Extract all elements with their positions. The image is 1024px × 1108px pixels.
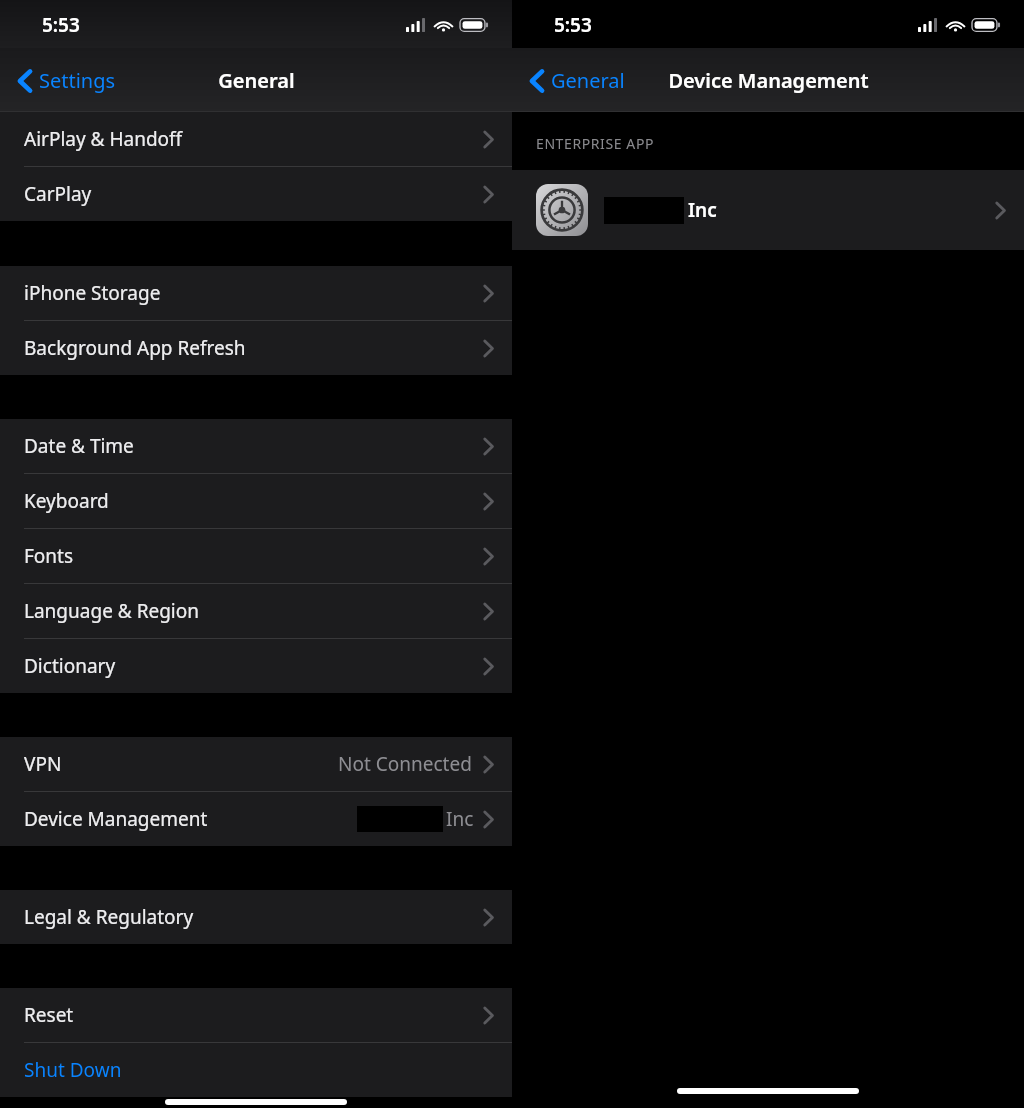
staticText: VPN bbox=[24, 751, 62, 777]
staticText: 5:53 bbox=[42, 12, 80, 38]
button[interactable]: Dictionary bbox=[0, 639, 512, 693]
button[interactable]: Fonts bbox=[0, 529, 512, 584]
staticText: General bbox=[551, 67, 625, 94]
staticText: 5:53 bbox=[554, 12, 592, 38]
button[interactable]: Reset bbox=[0, 988, 512, 1043]
staticText: Fonts bbox=[24, 543, 74, 569]
button[interactable]: iPhone Storage bbox=[0, 266, 512, 321]
staticText: General bbox=[218, 67, 295, 94]
button[interactable]: Background App Refresh bbox=[0, 321, 512, 375]
button[interactable]: AirPlay & Handoff bbox=[0, 112, 512, 167]
staticText: Legal & Regulatory bbox=[24, 904, 194, 930]
button[interactable]: Inc bbox=[512, 170, 1024, 250]
button[interactable]: General bbox=[526, 61, 629, 100]
button[interactable]: VPN bbox=[0, 737, 512, 792]
button[interactable]: CarPlay bbox=[0, 167, 512, 221]
staticText: Language & Region bbox=[24, 598, 199, 624]
staticText: Settings bbox=[39, 67, 116, 94]
staticText: Shut Down bbox=[24, 1057, 122, 1083]
staticText: AirPlay & Handoff bbox=[24, 126, 183, 152]
button[interactable]: Device Management bbox=[0, 792, 512, 846]
staticText: Keyboard bbox=[24, 488, 109, 514]
button[interactable]: Shut Down bbox=[0, 1043, 512, 1097]
button[interactable]: Keyboard bbox=[0, 474, 512, 529]
staticText: Date & Time bbox=[24, 433, 134, 459]
button[interactable]: Date & Time bbox=[0, 419, 512, 474]
staticText: CarPlay bbox=[24, 181, 92, 207]
staticText: Not Connected bbox=[338, 751, 472, 777]
staticText: Dictionary bbox=[24, 653, 116, 679]
staticText: iPhone Storage bbox=[24, 280, 161, 306]
button[interactable]: Language & Region bbox=[0, 584, 512, 639]
staticText: Device Management bbox=[668, 67, 869, 94]
staticText: Inc bbox=[446, 806, 474, 832]
staticText: Background App Refresh bbox=[24, 335, 246, 361]
staticText: Reset bbox=[24, 1002, 74, 1028]
button[interactable]: Legal & Regulatory bbox=[0, 890, 512, 944]
staticText: Inc bbox=[688, 197, 717, 223]
staticText: Device Management bbox=[24, 806, 208, 832]
staticText: ENTERPRISE APP bbox=[536, 134, 655, 153]
button[interactable]: Settings bbox=[14, 61, 120, 100]
